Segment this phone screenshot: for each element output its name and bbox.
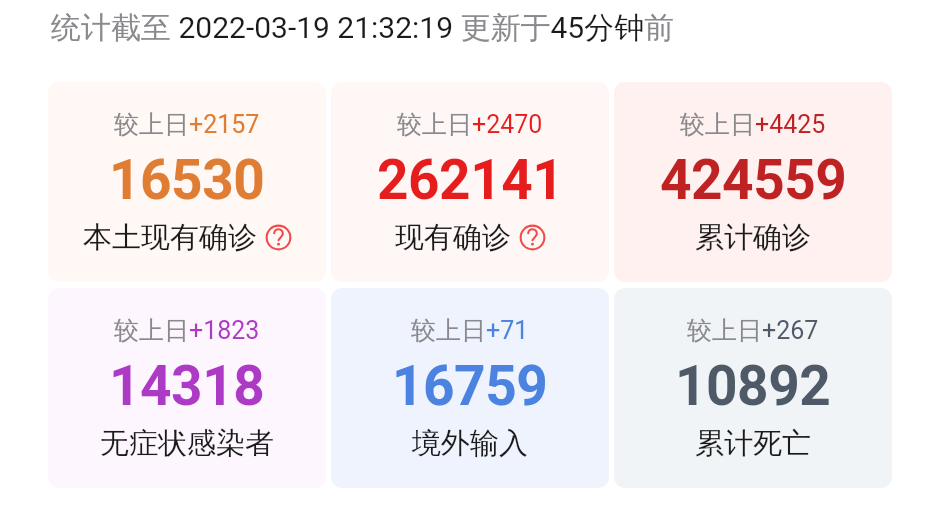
staticText: 262141: [377, 148, 564, 212]
staticText: 较上日+2157: [114, 109, 260, 140]
button[interactable]: 较上日+2157: [48, 82, 326, 282]
staticText: 统计截至 2022-03-19 21:32:19 更新于45分钟前: [51, 9, 675, 47]
staticText: 较上日+1823: [114, 315, 260, 346]
staticText: 现有确诊: [395, 219, 511, 256]
staticText: 16530: [109, 148, 265, 212]
staticText: 14318: [109, 354, 265, 418]
button[interactable]: Help: [519, 224, 546, 251]
staticText: 境外输入: [412, 425, 528, 462]
button[interactable]: Help: [265, 224, 292, 251]
staticText: 10892: [675, 354, 831, 418]
staticText: 无症状感染者: [100, 425, 274, 462]
staticText: 较上日+267: [687, 315, 819, 346]
staticText: 累计死亡: [695, 425, 811, 462]
button[interactable]: 较上日+4425: [614, 82, 892, 282]
button[interactable]: 较上日+267: [614, 288, 892, 488]
staticText: 424559: [660, 148, 847, 212]
button[interactable]: 较上日+1823: [48, 288, 326, 488]
staticText: 较上日+71: [411, 315, 529, 346]
staticText: 累计确诊: [695, 219, 811, 256]
staticText: 较上日+2470: [397, 109, 543, 140]
staticText: 本土现有确诊: [83, 219, 257, 256]
staticText: 较上日+4425: [680, 109, 826, 140]
button[interactable]: 较上日+71: [331, 288, 609, 488]
staticText: 16759: [392, 354, 548, 418]
button[interactable]: 较上日+2470: [331, 82, 609, 282]
